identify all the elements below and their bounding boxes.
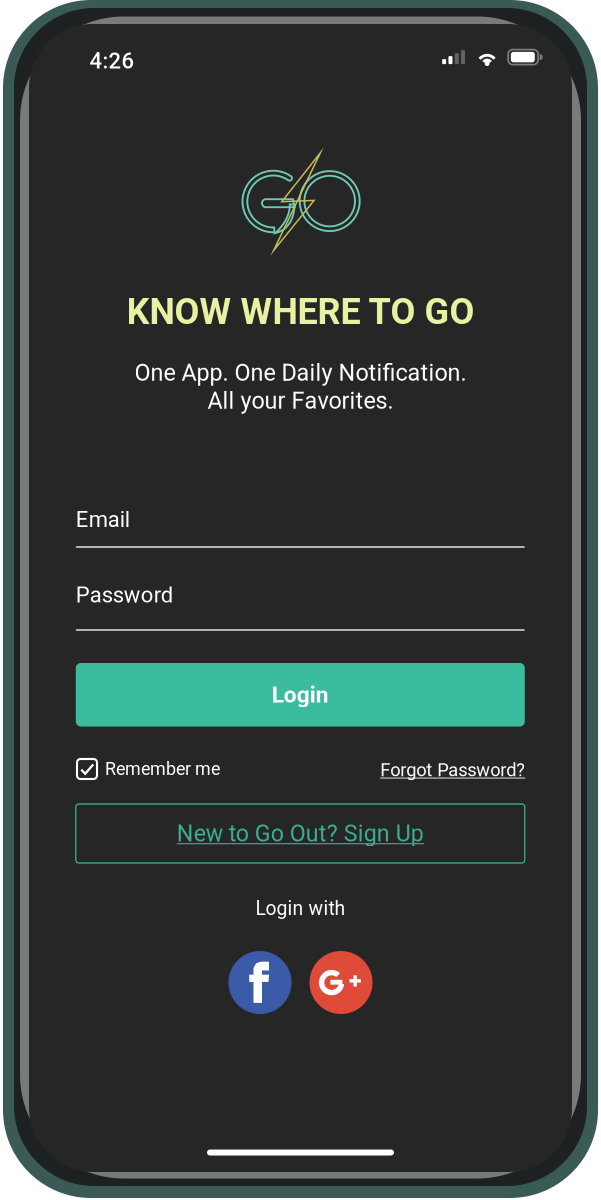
staticText: Password	[76, 582, 173, 608]
staticText: 4:26	[89, 48, 134, 74]
button[interactable]: Log in with Google Plus	[309, 951, 372, 1014]
button[interactable]: Log in with Facebook	[228, 951, 291, 1014]
button[interactable]: Forgot Password?	[365, 759, 525, 781]
staticText: Login with	[255, 897, 345, 920]
staticText: New to Go Out? Sign Up	[177, 820, 424, 847]
button[interactable]: Login	[76, 663, 525, 726]
staticText: Email	[76, 506, 130, 532]
button[interactable]: Remember me	[77, 758, 220, 780]
staticText: Remember me	[105, 758, 220, 779]
staticText: KNOW WHERE TO GO	[126, 290, 474, 333]
staticText: Forgot Password?	[380, 759, 525, 781]
staticText: All your Favorites.	[207, 387, 393, 414]
staticText: One App. One Daily Notification.	[134, 359, 466, 386]
staticText: Login	[272, 681, 329, 708]
button[interactable]: New to Go Out? Sign Up	[76, 804, 525, 863]
